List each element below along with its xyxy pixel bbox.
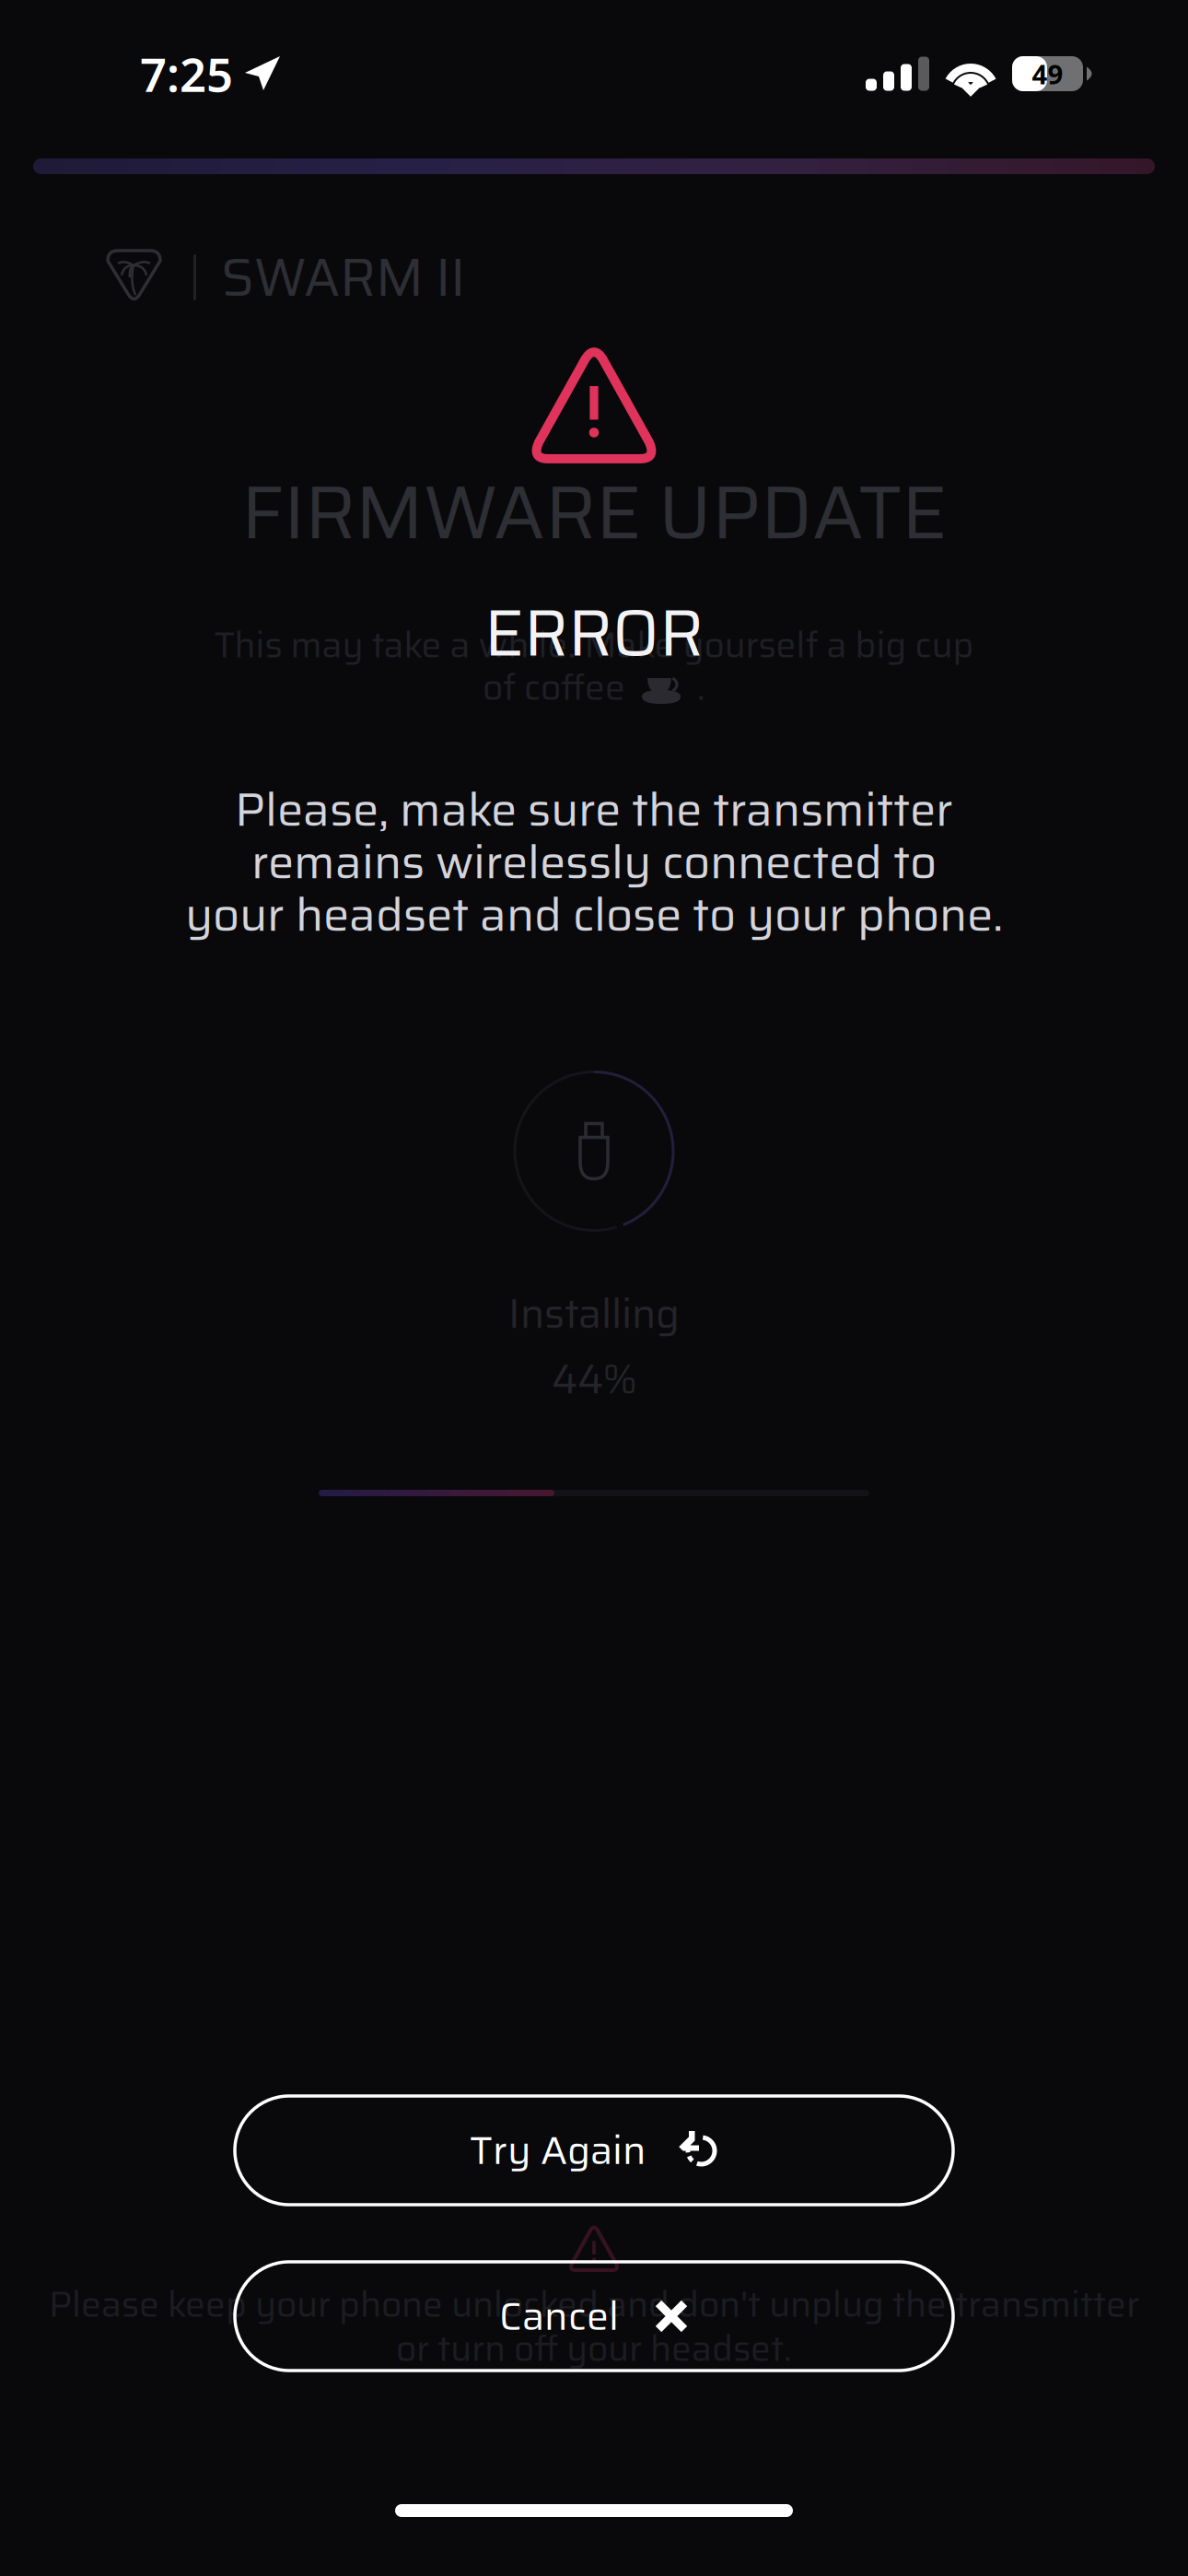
staticText: of coffee (483, 659, 625, 715)
staticText: remains wirelessly connected to (251, 825, 937, 899)
staticText: Installing (508, 1282, 680, 1346)
staticText: . (697, 659, 705, 715)
staticText: Please, make sure the transmitter (235, 773, 953, 846)
button[interactable]: Cancel (235, 2262, 953, 2371)
staticText: ERROR (484, 582, 704, 684)
staticText: Cancel (499, 2285, 619, 2347)
staticText: This may take a while. Make yourself a b… (214, 617, 974, 673)
staticText: SWARM II (221, 236, 465, 319)
staticText: 49 (1032, 56, 1063, 92)
staticText: FIRMWARE UPDATE (241, 453, 947, 571)
staticText: 7:25 (140, 43, 233, 105)
staticText: or turn off your headset. (396, 2320, 792, 2377)
staticText: Please keep your phone unlocked and don'… (49, 2276, 1139, 2332)
staticText: 44% (552, 1347, 636, 1411)
staticText: your headset and close to your phone. (185, 878, 1003, 951)
staticText: Try Again (470, 2119, 646, 2181)
button[interactable]: Try Again (235, 2096, 953, 2205)
